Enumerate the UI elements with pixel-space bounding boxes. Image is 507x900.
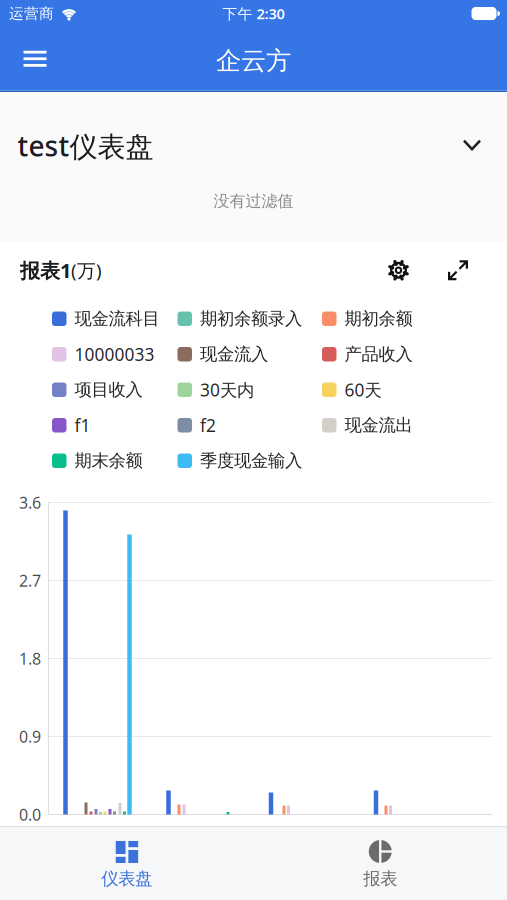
staticText: 下午 2:30 <box>222 4 284 23</box>
staticText: 0.0 <box>19 804 41 825</box>
staticText: 产品收入 <box>344 344 412 365</box>
staticText: 运营商 <box>9 4 54 22</box>
button[interactable]: 报表 <box>253 827 507 889</box>
staticText: 报表 <box>363 868 397 889</box>
staticText: 2.7 <box>19 570 41 591</box>
staticText: 现金流科目 <box>74 308 159 329</box>
button[interactable]: test仪表盘 <box>0 92 507 164</box>
staticText: 3.6 <box>19 492 41 513</box>
staticText: 60天 <box>344 378 381 401</box>
staticText: 30天内 <box>200 378 254 401</box>
staticText: f1 <box>74 414 90 437</box>
staticText: 项目收入 <box>74 379 142 400</box>
staticText: 季度现金输入 <box>200 450 302 471</box>
button[interactable]: 仪表盘 <box>0 827 253 889</box>
button[interactable]: 菜单 <box>0 41 46 77</box>
staticText: test仪表盘 <box>17 127 153 164</box>
staticText: 0.9 <box>19 726 41 747</box>
staticText: 期末余额 <box>74 450 142 471</box>
staticText: 现金流入 <box>200 344 268 365</box>
staticText: 期初余额录入 <box>200 308 302 329</box>
staticText: 10000033 <box>74 343 154 366</box>
button[interactable]: 全屏 <box>409 260 507 280</box>
staticText: (万) <box>71 258 102 283</box>
staticText: 报表1 <box>20 257 71 284</box>
staticText: 期初余额 <box>344 308 412 329</box>
staticText: 1.8 <box>19 648 41 669</box>
staticText: f2 <box>200 414 216 437</box>
staticText: 没有过滤值 <box>213 191 293 211</box>
button[interactable]: 设置 <box>388 260 409 281</box>
staticText: 仪表盘 <box>101 868 152 889</box>
staticText: 企云方 <box>216 45 291 76</box>
staticText: 现金流出 <box>344 415 412 436</box>
